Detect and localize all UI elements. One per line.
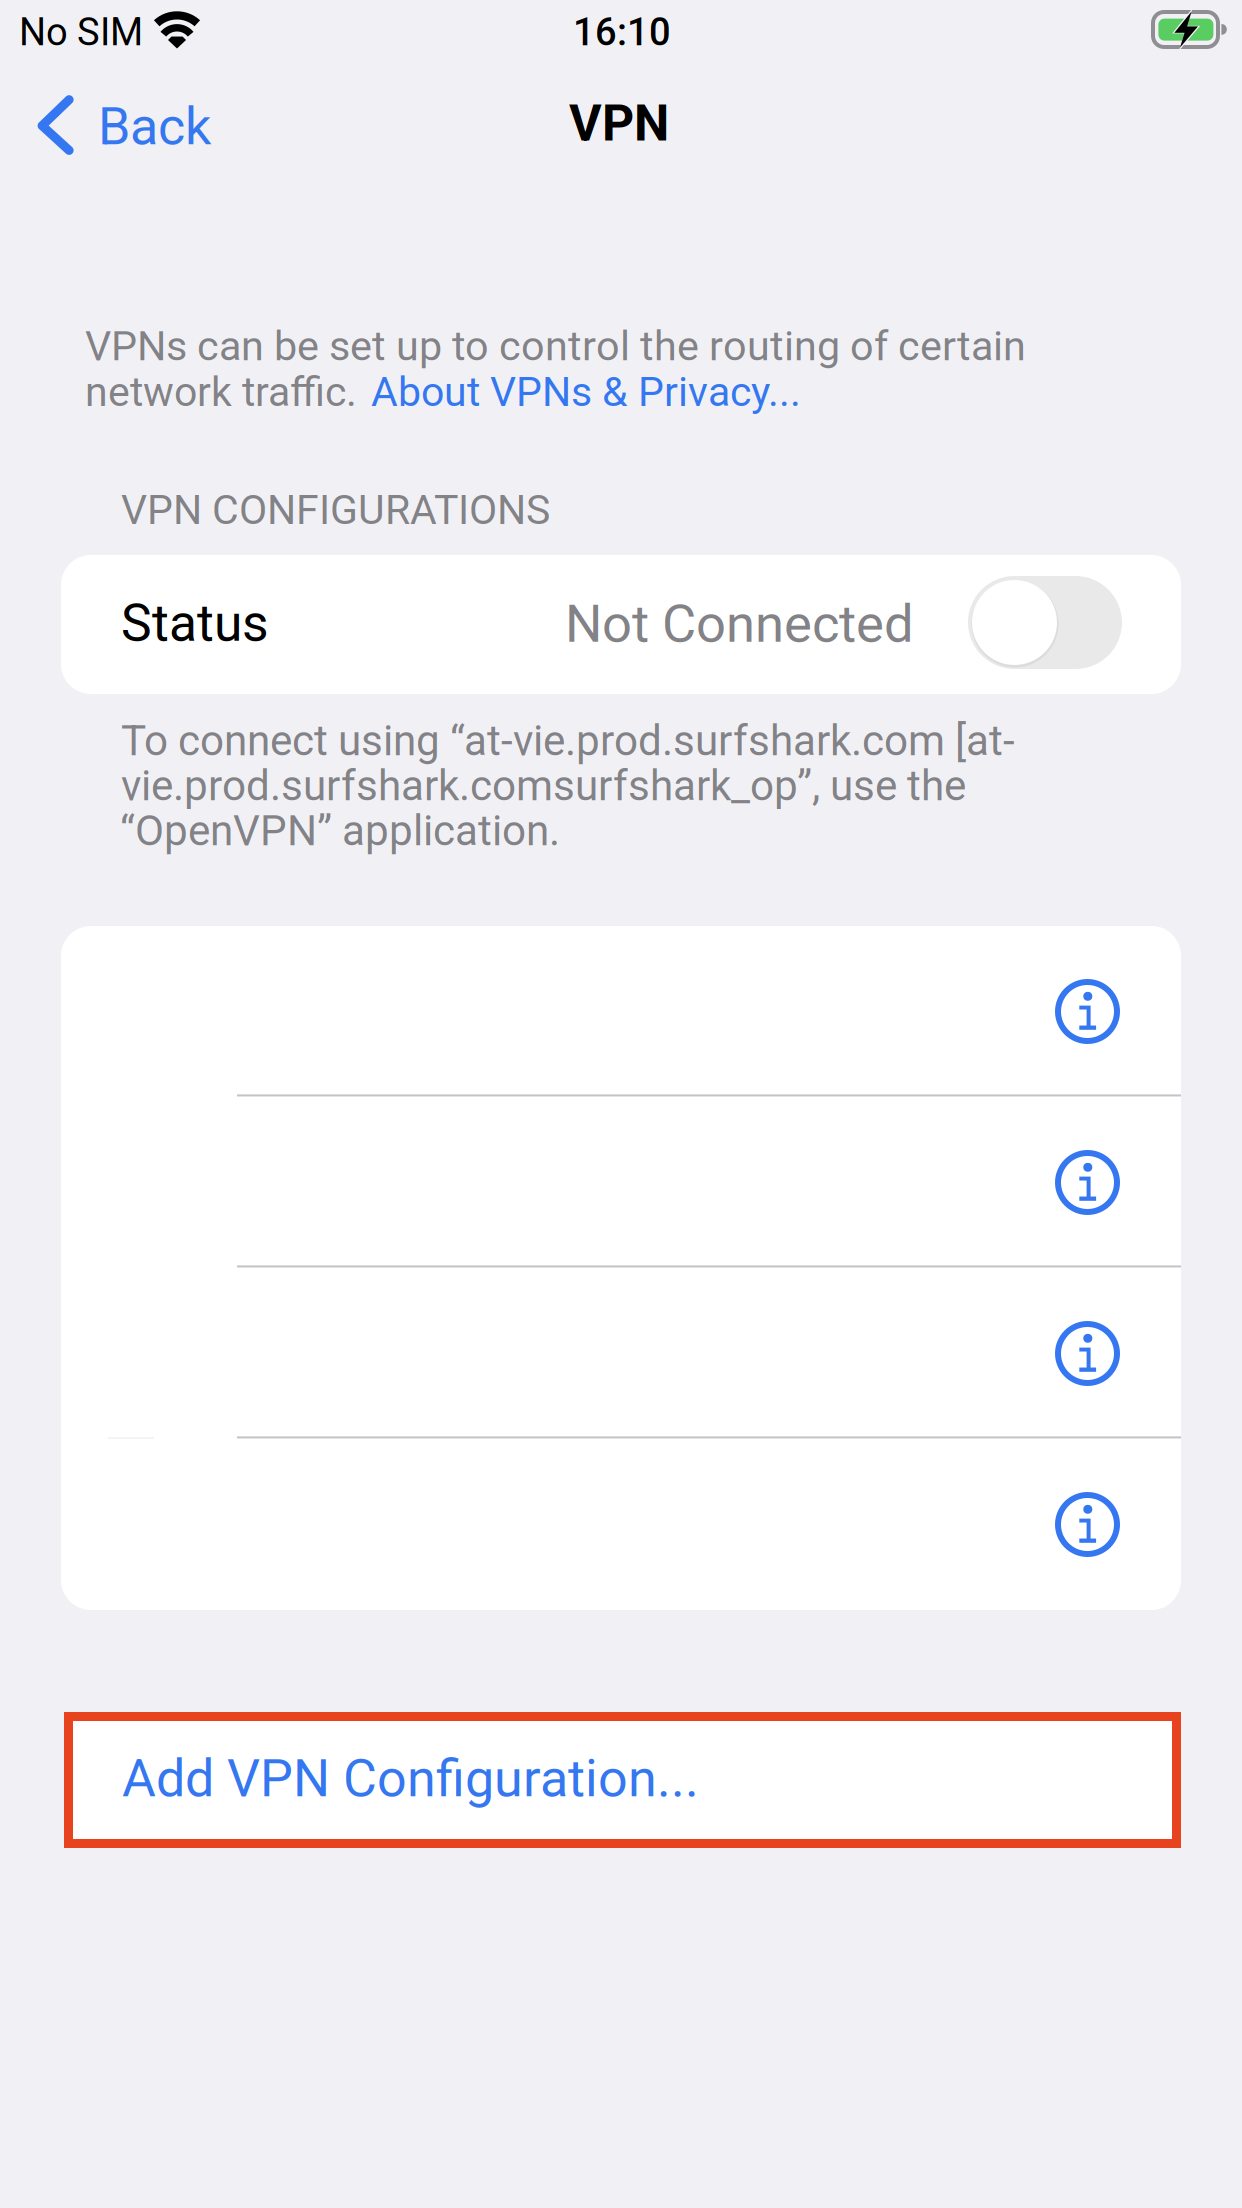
button[interactable]: More Info	[1015, 1268, 1175, 1439]
button[interactable]: More Info	[1015, 926, 1175, 1097]
staticText: network traffic.	[85, 368, 367, 416]
button[interactable]: Add VPN Configuration...	[64, 1712, 1181, 1848]
staticText: Back	[98, 96, 211, 157]
button[interactable]: Back	[0, 70, 250, 180]
staticText: To connect using “at-vie.prod.surfshark.…	[121, 716, 1015, 765]
staticText: Status	[121, 593, 269, 653]
staticText: “OpenVPN” application.	[120, 806, 560, 855]
staticText: VPN CONFIGURATIONS	[121, 486, 550, 534]
staticText: vie.prod.surfshark.comsurfshark_op”, use…	[121, 761, 966, 810]
button[interactable]: More Info	[1015, 1439, 1175, 1610]
staticText: About VPNs & Privacy...	[371, 368, 801, 416]
button[interactable]: More Info	[1015, 1097, 1175, 1268]
button[interactable]: VPN	[968, 576, 1122, 669]
staticText: No SIM	[19, 10, 143, 54]
staticText: Add VPN Configuration...	[122, 1748, 699, 1809]
staticText: VPN	[569, 94, 669, 153]
staticText: VPNs can be set up to control the routin…	[85, 322, 1026, 370]
button[interactable]: About VPNs & Privacy...	[371, 368, 801, 416]
staticText: Not Connected	[565, 593, 914, 654]
staticText: 16:10	[573, 10, 671, 54]
